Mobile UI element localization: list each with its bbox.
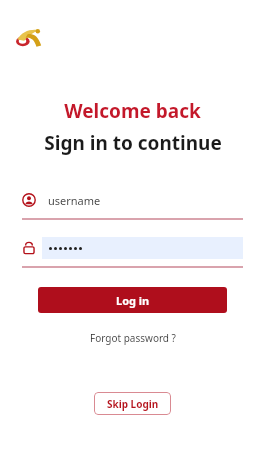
button[interactable]: username (22, 188, 243, 220)
staticText: Sign in to continue (44, 130, 222, 156)
button[interactable]: Log in (38, 287, 227, 313)
button[interactable] (22, 236, 243, 268)
button[interactable]: Skip Login (94, 392, 171, 415)
button[interactable]: App logo (14, 24, 48, 54)
staticText: username (48, 193, 101, 208)
staticText: Welcome back (64, 98, 201, 124)
staticText: Skip Login (107, 397, 159, 411)
button[interactable]: Forgot password ? (82, 329, 184, 347)
staticText: Log in (116, 293, 150, 308)
staticText: Forgot password ? (90, 331, 176, 345)
